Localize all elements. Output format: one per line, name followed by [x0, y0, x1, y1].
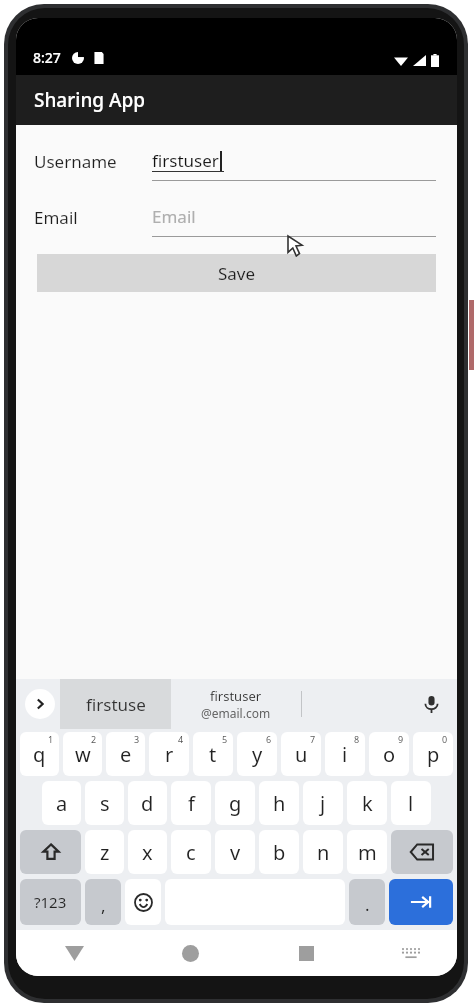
- staticText: Save: [218, 262, 256, 285]
- button[interactable]: r: [149, 732, 189, 776]
- button[interactable]: .: [349, 879, 385, 925]
- staticText: 6: [266, 733, 272, 745]
- staticText: Email: [34, 206, 152, 229]
- button[interactable]: Voice input: [414, 687, 448, 721]
- staticText: @email.com: [201, 705, 271, 721]
- staticText: 5: [222, 733, 228, 745]
- staticText: 4: [178, 733, 184, 745]
- button[interactable]: Home: [132, 930, 248, 976]
- button[interactable]: h: [259, 781, 299, 825]
- staticText: r: [165, 741, 174, 768]
- button[interactable]: w: [63, 732, 102, 776]
- button[interactable]: firstuser: [152, 147, 436, 181]
- button[interactable]: firstuser: [171, 679, 301, 729]
- staticText: l: [408, 790, 414, 817]
- staticText: z: [100, 839, 110, 866]
- staticText: d: [141, 790, 154, 817]
- button[interactable]: m: [347, 830, 387, 874]
- button[interactable]: a: [42, 781, 81, 825]
- staticText: firstuser: [152, 149, 219, 172]
- staticText: Username: [34, 150, 152, 173]
- button[interactable]: y: [237, 732, 277, 776]
- button[interactable]: z: [85, 830, 124, 874]
- button[interactable]: e: [106, 732, 145, 776]
- button[interactable]: k: [347, 781, 387, 825]
- staticText: s: [100, 790, 110, 817]
- button[interactable]: s: [85, 781, 124, 825]
- button[interactable]: u: [281, 732, 321, 776]
- button[interactable]: f: [171, 781, 211, 825]
- staticText: b: [273, 839, 286, 866]
- button[interactable]: Email: [152, 203, 436, 237]
- button[interactable]: Emoji: [125, 879, 161, 925]
- staticText: k: [362, 790, 373, 817]
- button[interactable]: ,: [85, 879, 121, 925]
- button[interactable]: Backspace: [391, 830, 453, 874]
- button[interactable]: ?123: [20, 879, 81, 925]
- staticText: t: [209, 741, 217, 768]
- button[interactable]: Shift: [20, 830, 81, 874]
- button[interactable]: Switch keyboard: [364, 930, 457, 976]
- staticText: v: [230, 839, 241, 866]
- staticText: Sharing App: [34, 87, 146, 113]
- button[interactable]: Sharing App: [16, 75, 457, 125]
- staticText: j: [320, 790, 326, 817]
- button[interactable]: i: [325, 732, 365, 776]
- button[interactable]: Expand suggestions: [25, 689, 55, 719]
- staticText: .: [365, 893, 370, 916]
- button[interactable]: x: [128, 830, 167, 874]
- staticText: h: [273, 790, 286, 817]
- staticText: o: [383, 741, 396, 768]
- button[interactable]: Save: [37, 254, 436, 292]
- staticText: u: [295, 741, 308, 768]
- button[interactable]: o: [369, 732, 409, 776]
- button[interactable]: t: [193, 732, 233, 776]
- button[interactable]: Next field: [389, 879, 453, 925]
- staticText: 8: [354, 733, 360, 745]
- staticText: n: [317, 839, 330, 866]
- staticText: g: [229, 790, 242, 817]
- staticText: p: [427, 741, 440, 768]
- button[interactable]: g: [215, 781, 255, 825]
- staticText: i: [342, 741, 348, 768]
- button[interactable]: Back: [16, 930, 132, 976]
- staticText: ?123: [34, 892, 67, 912]
- staticText: 8:27: [33, 48, 61, 67]
- button[interactable]: v: [215, 830, 255, 874]
- staticText: Email: [152, 205, 196, 228]
- staticText: firstuse: [86, 693, 146, 716]
- button[interactable]: j: [303, 781, 343, 825]
- staticText: 2: [91, 733, 97, 745]
- staticText: m: [358, 839, 377, 866]
- button[interactable]: q: [20, 732, 59, 776]
- staticText: f: [188, 790, 195, 817]
- staticText: firstuser: [210, 687, 262, 705]
- button[interactable]: firstuse: [60, 679, 171, 729]
- staticText: e: [120, 741, 132, 768]
- staticText: 7: [310, 733, 316, 745]
- button[interactable]: n: [303, 830, 343, 874]
- staticText: 0: [442, 733, 448, 745]
- button[interactable]: b: [259, 830, 299, 874]
- staticText: q: [33, 741, 46, 768]
- staticText: c: [186, 839, 196, 866]
- staticText: x: [142, 839, 153, 866]
- staticText: 9: [398, 733, 404, 745]
- staticText: a: [56, 790, 68, 817]
- button[interactable]: Recents: [248, 930, 364, 976]
- staticText: 1: [48, 733, 54, 745]
- staticText: 3: [134, 733, 140, 745]
- staticText: ,: [101, 894, 106, 917]
- staticText: y: [252, 741, 263, 768]
- button[interactable]: p: [413, 732, 453, 776]
- button[interactable]: c: [171, 830, 211, 874]
- staticText: w: [75, 741, 91, 768]
- button[interactable]: d: [128, 781, 167, 825]
- button[interactable]: l: [391, 781, 431, 825]
